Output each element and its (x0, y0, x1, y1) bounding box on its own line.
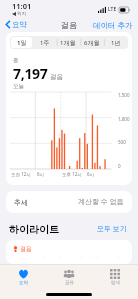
staticText: 1년 (111, 39, 121, 47)
staticText: 500 (118, 139, 126, 145)
staticText: 0 (118, 163, 121, 169)
staticText: 1,500 (118, 92, 130, 98)
staticText: 걸음 (20, 245, 32, 253)
staticText: 1일 (17, 39, 27, 47)
staticText: LTE (108, 6, 117, 13)
staticText: 11:01 (12, 1, 32, 11)
staticText: 1,000 (118, 116, 130, 122)
staticText: 7,197 (13, 64, 48, 83)
staticText: 걸음 (61, 20, 77, 30)
button[interactable]: 요약 (0, 265, 46, 290)
staticText: 걸음 (50, 73, 63, 81)
staticText: 이번 주 평균 걸음 수가 지난주보다 늘었습니다. (13, 256, 125, 258)
staticText: 요약 (12, 20, 27, 29)
staticText: 데이터 추가 (93, 20, 133, 30)
button[interactable]: 탐색 (92, 265, 138, 290)
button[interactable]: 추세 (6, 191, 132, 213)
button[interactable]: 데이터 추가 (88, 18, 138, 32)
button[interactable]: 공유 (46, 265, 92, 290)
staticText: 모두 보기 (97, 224, 127, 234)
button[interactable]: 1개월 (57, 37, 79, 48)
staticText: 오늘 (13, 83, 24, 90)
staticText: 총 (13, 57, 19, 64)
button[interactable]: 1년 (105, 37, 127, 48)
staticText: 1주 (40, 39, 50, 47)
button[interactable]: 걸음 (6, 240, 132, 264)
staticText: 1개월 (60, 39, 76, 47)
button[interactable]: 6개월 (81, 37, 103, 48)
button[interactable]: 요약 (0, 18, 31, 31)
staticText: 추세 (14, 198, 28, 207)
staticText: 오후 12시 (62, 171, 82, 177)
staticText: 6시 (87, 171, 95, 177)
button[interactable]: 모두 보기 (95, 222, 129, 236)
staticText: 오전 12시 (11, 171, 31, 177)
staticText: 위치 (17, 11, 26, 17)
staticText: 계산할 수 없음 (78, 197, 124, 207)
button[interactable]: 1주 (34, 37, 55, 48)
staticText: 6시 (37, 171, 45, 177)
staticText: 요약 (19, 280, 28, 286)
staticText: 6개월 (84, 39, 100, 47)
staticText: 공유 (65, 280, 74, 286)
staticText: 하이라이트 (9, 223, 59, 236)
button[interactable]: 1일 (11, 37, 32, 48)
staticText: 탐색 (111, 280, 120, 286)
